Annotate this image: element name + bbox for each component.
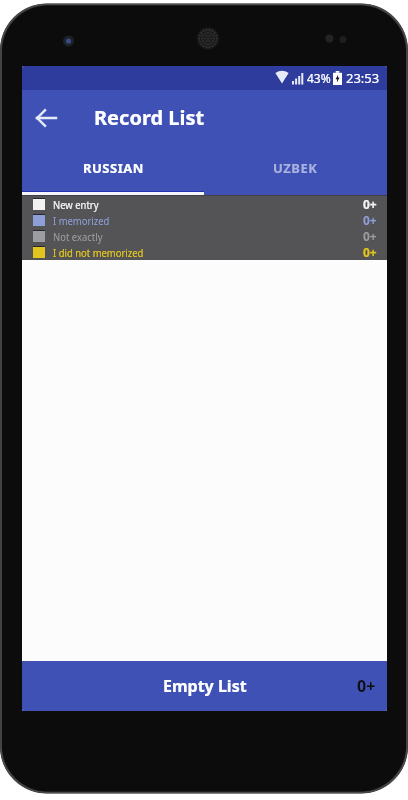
- staticText: Record List: [94, 104, 205, 131]
- staticText: 23:53: [346, 69, 380, 87]
- button[interactable]: Not exactly: [22, 228, 387, 244]
- button[interactable]: I memorized: [22, 212, 387, 228]
- button[interactable]: New entry: [22, 196, 387, 212]
- staticText: Not exactly: [53, 229, 103, 244]
- staticText: 43%: [307, 70, 331, 86]
- staticText: 0+: [363, 228, 377, 244]
- button[interactable]: UZBEK: [204, 145, 387, 191]
- staticText: 0+: [363, 212, 377, 228]
- staticText: I did not memorized: [53, 245, 144, 260]
- button[interactable]: Empty List: [22, 661, 387, 711]
- staticText: RUSSIAN: [83, 159, 144, 177]
- staticText: New entry: [53, 197, 99, 212]
- staticText: UZBEK: [273, 159, 318, 177]
- button[interactable]: RUSSIAN: [22, 145, 204, 191]
- staticText: 0+: [363, 244, 377, 260]
- staticText: 0+: [363, 196, 377, 212]
- staticText: Empty List: [163, 675, 247, 697]
- button[interactable]: I did not memorized: [22, 244, 387, 260]
- button[interactable]: [22, 90, 70, 145]
- staticText: I memorized: [53, 213, 110, 228]
- staticText: 0+: [357, 675, 376, 697]
